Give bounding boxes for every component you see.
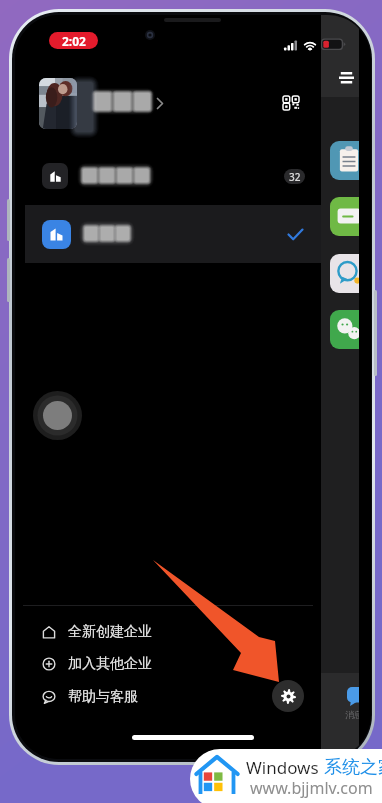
staticText: Windows	[246, 756, 324, 779]
button[interactable]: 全新创建企业	[23, 617, 313, 647]
button[interactable]	[25, 205, 321, 263]
staticText: 帮助与客服	[68, 688, 138, 706]
staticText: 32	[289, 170, 301, 184]
button[interactable]: Settings	[272, 680, 304, 712]
button[interactable]: 帮助与客服	[23, 682, 313, 712]
button[interactable]: 32	[25, 154, 321, 198]
staticText: 加入其他企业	[68, 655, 152, 673]
staticText: 2:02	[62, 33, 86, 49]
button[interactable]: Recording timer	[49, 32, 98, 49]
staticText: 系统之家	[324, 756, 382, 779]
staticText: 消息	[345, 709, 359, 720]
staticText: 全新创建企业	[68, 623, 152, 641]
button[interactable]: QQ	[330, 254, 359, 293]
staticText: www.bjjmlv.com	[250, 777, 373, 799]
button[interactable]: Messages tab	[321, 673, 359, 759]
button[interactable]	[25, 70, 315, 136]
button[interactable]: Files	[330, 197, 359, 236]
button[interactable]: WeChat	[330, 310, 359, 349]
button[interactable]: 加入其他企业	[23, 649, 313, 679]
button[interactable]: Scan QR code	[275, 87, 307, 119]
button[interactable]: Notes	[330, 141, 359, 180]
other: Menu	[339, 72, 354, 84]
